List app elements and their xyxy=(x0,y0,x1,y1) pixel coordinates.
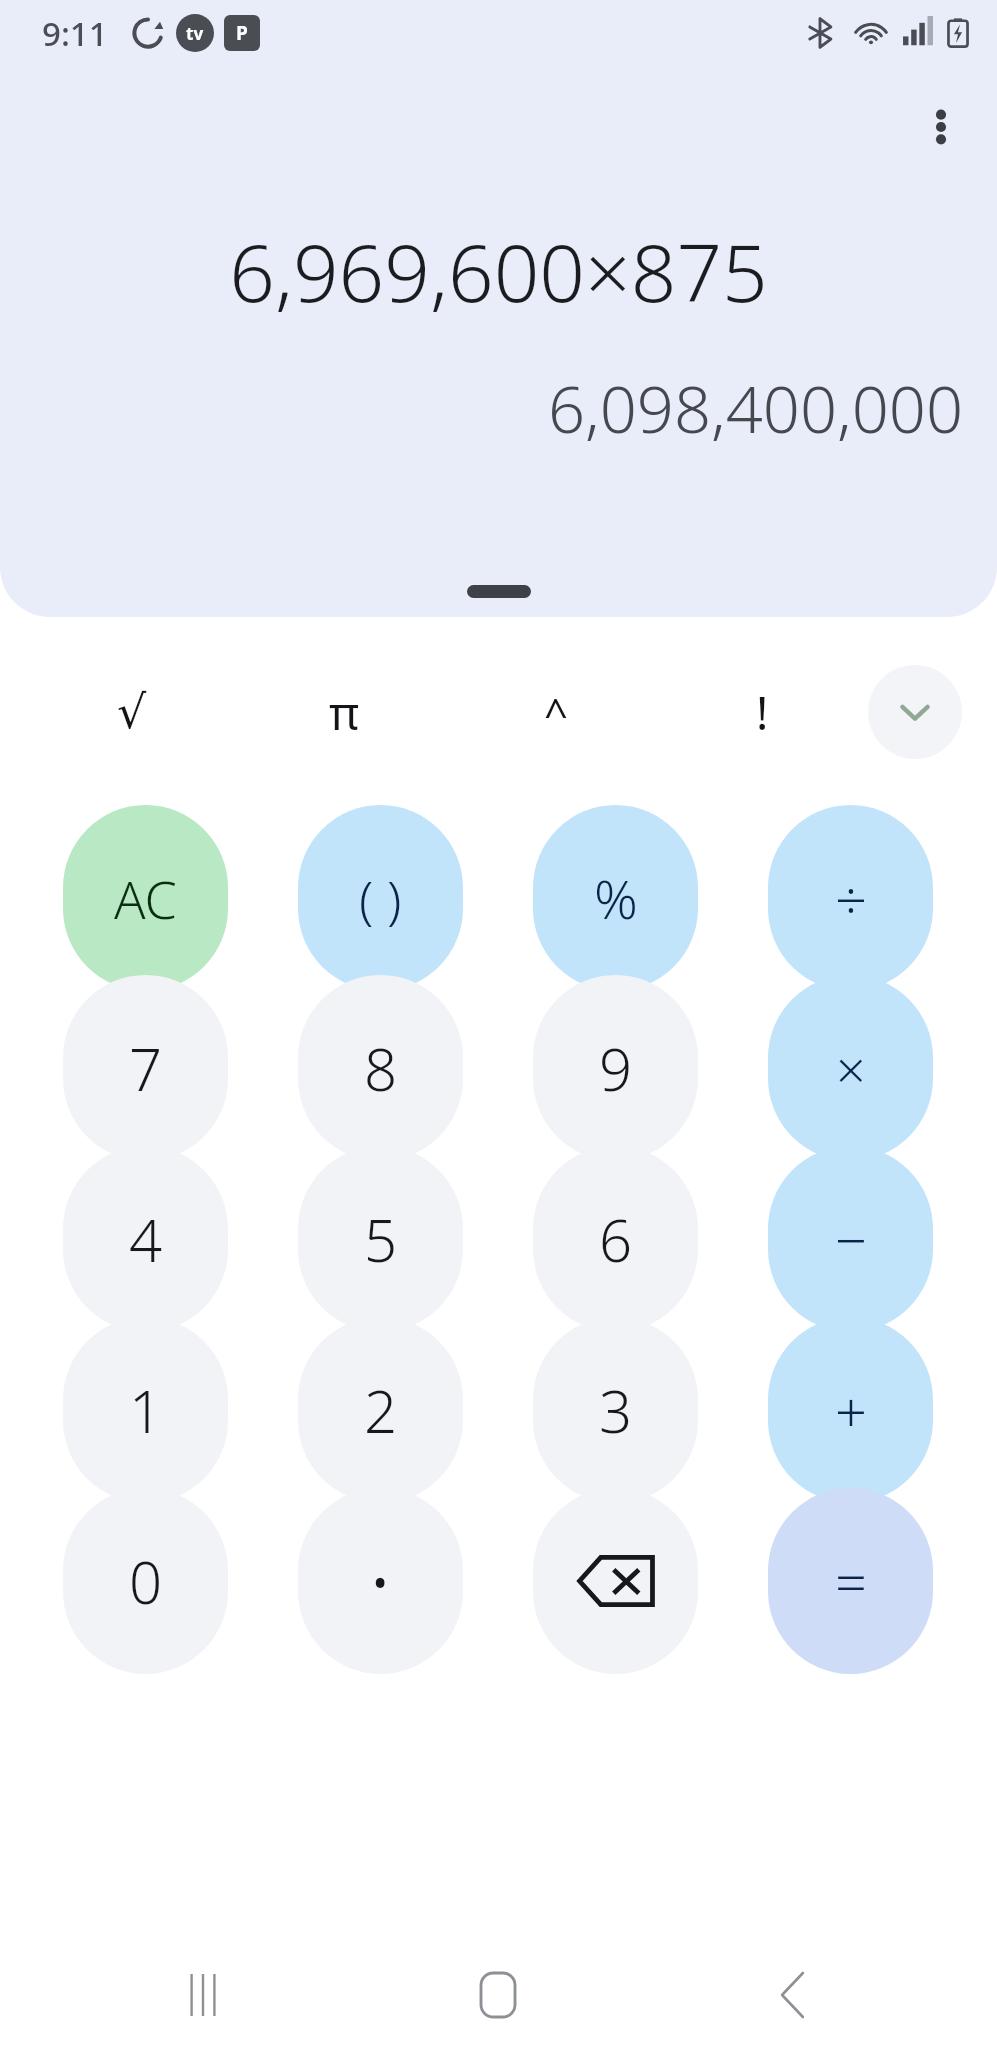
staticText: − xyxy=(835,1201,867,1277)
button[interactable]: + xyxy=(768,1317,933,1503)
staticText: 0 xyxy=(129,1542,163,1621)
button[interactable] xyxy=(467,585,531,598)
staticText: AC xyxy=(114,863,177,934)
staticText: 2 xyxy=(364,1371,398,1450)
staticText: 3 xyxy=(599,1371,633,1450)
staticText: = xyxy=(835,1543,867,1619)
staticText: 5 xyxy=(364,1200,398,1279)
button[interactable]: ( ) xyxy=(298,805,463,991)
button[interactable]: Backspace xyxy=(533,1488,698,1674)
staticText: ( ) xyxy=(359,863,402,934)
button[interactable]: 9 xyxy=(533,975,698,1161)
staticText: √ xyxy=(117,685,147,739)
button[interactable]: 8 xyxy=(298,975,463,1161)
staticText: P xyxy=(236,20,248,46)
staticText: 6 xyxy=(599,1200,633,1279)
button[interactable]: = xyxy=(768,1488,933,1674)
staticText: ÷ xyxy=(835,860,867,936)
button[interactable]: % xyxy=(533,805,698,991)
button[interactable]: Home xyxy=(443,1950,553,2040)
button[interactable]: Back xyxy=(738,1950,848,2040)
staticText: tv xyxy=(186,22,204,45)
button[interactable]: × xyxy=(768,975,933,1161)
button[interactable]: Recent apps xyxy=(148,1950,258,2040)
button[interactable]: Expand xyxy=(868,665,962,759)
button[interactable]: 2 xyxy=(298,1317,463,1503)
button[interactable]: 3 xyxy=(533,1317,698,1503)
staticText: 9:11 xyxy=(42,11,108,56)
button[interactable]: 5 xyxy=(298,1146,463,1332)
button[interactable]: • xyxy=(298,1488,463,1674)
staticText: 7 xyxy=(129,1029,163,1108)
staticText: ! xyxy=(756,681,769,744)
button[interactable]: 6 xyxy=(533,1146,698,1332)
staticText: 6,098,400,000 xyxy=(26,364,963,453)
button[interactable]: More options xyxy=(896,82,986,172)
staticText: 9 xyxy=(599,1029,633,1108)
button[interactable]: 1 xyxy=(63,1317,228,1503)
staticText: + xyxy=(835,1372,867,1448)
button[interactable]: AC xyxy=(63,805,228,991)
staticText: π xyxy=(329,681,360,744)
button[interactable]: √ xyxy=(72,652,192,772)
staticText: • xyxy=(370,1544,391,1618)
button[interactable]: 7 xyxy=(63,975,228,1161)
staticText: % xyxy=(594,861,638,935)
button[interactable]: ^ xyxy=(496,652,616,772)
staticText: 6,969,600×875 xyxy=(26,216,971,325)
button[interactable]: ! xyxy=(702,652,822,772)
staticText: 8 xyxy=(364,1029,398,1108)
staticText: 4 xyxy=(129,1200,163,1279)
staticText: ^ xyxy=(544,684,569,741)
button[interactable]: π xyxy=(284,652,404,772)
staticText: × xyxy=(836,1033,866,1104)
button[interactable]: ÷ xyxy=(768,805,933,991)
button[interactable]: − xyxy=(768,1146,933,1332)
button[interactable]: 4 xyxy=(63,1146,228,1332)
staticText: 1 xyxy=(129,1371,163,1450)
button[interactable]: 0 xyxy=(63,1488,228,1674)
